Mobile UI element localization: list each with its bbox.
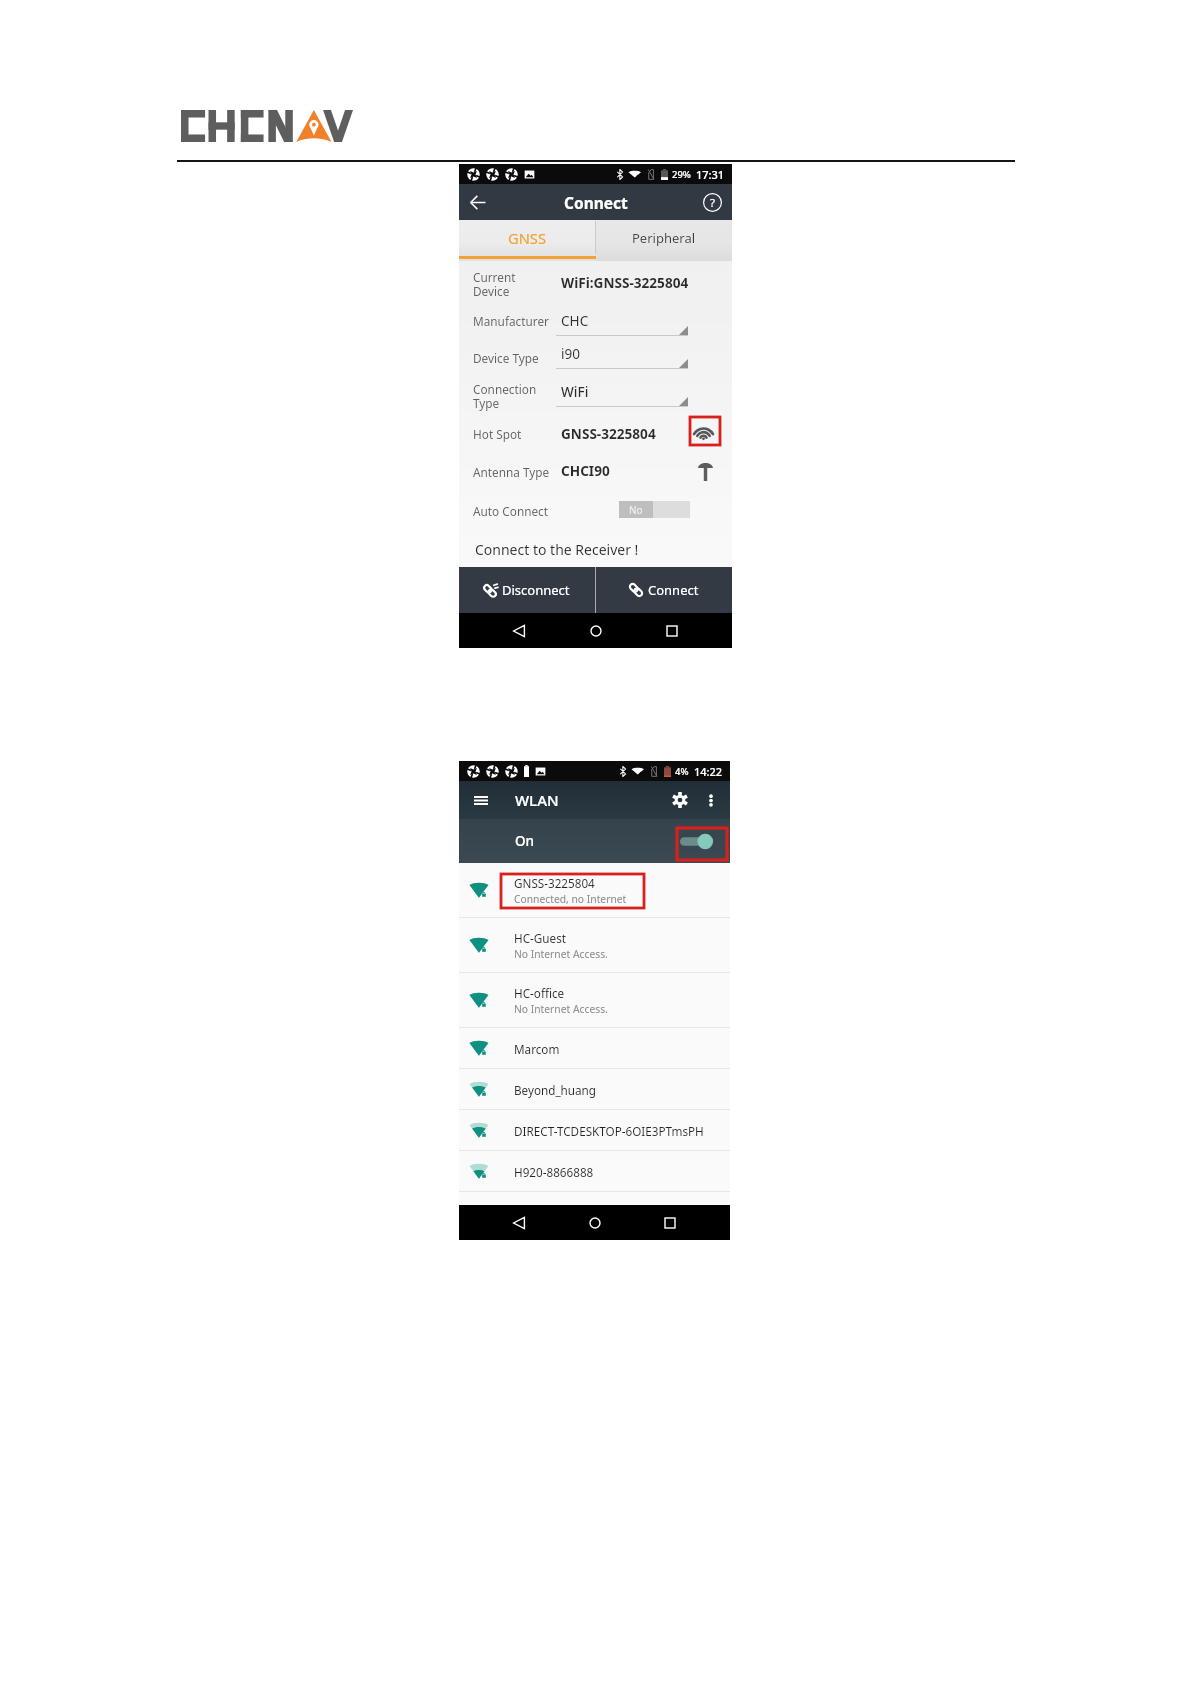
staticText: Antenna Type bbox=[473, 464, 550, 480]
staticText: CHC bbox=[561, 311, 589, 330]
staticText: HC-Guest bbox=[514, 930, 566, 946]
button[interactable]: HC-Guest bbox=[459, 918, 730, 972]
staticText: Connection Type bbox=[473, 381, 537, 411]
button[interactable]: WiFi hotspot bbox=[693, 422, 714, 443]
staticText: H920-8866888 bbox=[514, 1164, 594, 1180]
staticText: No bbox=[629, 503, 643, 517]
staticText: Current Device bbox=[473, 269, 516, 299]
staticText: CHCI90 bbox=[561, 461, 610, 480]
staticText: Disconnect bbox=[502, 581, 570, 599]
button[interactable]: Back bbox=[507, 1211, 531, 1235]
staticText: Connect to the Receiver ! bbox=[475, 540, 639, 559]
button[interactable]: Disconnect bbox=[459, 567, 595, 613]
button[interactable]: GNSS-3225804 bbox=[459, 863, 730, 917]
staticText: DIRECT-TCDESKTOP-6OIE3PTmsPH bbox=[514, 1123, 704, 1139]
staticText: Manufacturer bbox=[473, 313, 549, 329]
button[interactable]: Connect bbox=[596, 567, 732, 613]
button[interactable]: Beyond_huang bbox=[459, 1069, 730, 1109]
button[interactable]: Help bbox=[703, 193, 722, 212]
staticText: GNSS-3225804 bbox=[514, 875, 595, 891]
staticText: WLAN bbox=[515, 790, 559, 810]
button[interactable]: Marcom bbox=[459, 1028, 730, 1068]
button[interactable]: Back bbox=[470, 195, 486, 210]
staticText: No Internet Access. bbox=[514, 1002, 608, 1016]
staticText: 17:31 bbox=[696, 167, 725, 182]
staticText: No Internet Access. bbox=[514, 947, 608, 961]
button[interactable]: Menu bbox=[474, 796, 488, 805]
staticText: On bbox=[515, 832, 535, 850]
button[interactable]: GNSS bbox=[459, 220, 595, 261]
staticText: Auto Connect bbox=[473, 503, 549, 519]
staticText: Connect bbox=[564, 192, 628, 213]
staticText: GNSS bbox=[508, 228, 546, 248]
staticText: Connect bbox=[648, 581, 699, 599]
button[interactable]: Peripheral bbox=[595, 220, 732, 261]
button[interactable]: Home bbox=[583, 1211, 607, 1235]
staticText: 29% bbox=[672, 168, 691, 181]
button[interactable]: Recents bbox=[660, 619, 684, 643]
button[interactable]: More options bbox=[706, 794, 716, 807]
staticText: WiFi bbox=[561, 382, 589, 401]
button[interactable]: Home bbox=[584, 619, 608, 643]
button[interactable]: WiFi toggle bbox=[680, 834, 712, 849]
button[interactable]: DIRECT-TCDESKTOP-6OIE3PTmsPH bbox=[459, 1110, 730, 1150]
staticText: 14:22 bbox=[694, 764, 723, 779]
staticText: Hot Spot bbox=[473, 426, 522, 442]
staticText: Connected, no Internet bbox=[514, 892, 627, 906]
button[interactable]: Back bbox=[507, 619, 531, 643]
staticText: 4% bbox=[675, 765, 689, 778]
button[interactable]: Settings bbox=[672, 792, 688, 808]
staticText: Device Type bbox=[473, 350, 539, 366]
staticText: i90 bbox=[561, 344, 581, 363]
staticText: WiFi:GNSS-3225804 bbox=[561, 273, 689, 292]
staticText: GNSS-3225804 bbox=[561, 424, 656, 443]
staticText: Beyond_huang bbox=[514, 1082, 596, 1098]
button[interactable]: H920-8866888 bbox=[459, 1151, 730, 1191]
button[interactable]: Recents bbox=[658, 1211, 682, 1235]
staticText: HC-office bbox=[514, 985, 565, 1001]
button[interactable]: No bbox=[619, 501, 690, 518]
staticText: Peripheral bbox=[632, 229, 696, 247]
button[interactable]: HC-office bbox=[459, 973, 730, 1027]
staticText: ? bbox=[710, 195, 715, 211]
staticText: Marcom bbox=[514, 1041, 560, 1057]
